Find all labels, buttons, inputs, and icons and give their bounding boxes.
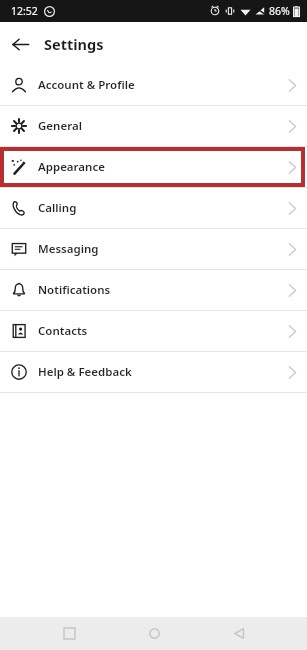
staticText: Settings xyxy=(44,34,104,54)
staticText: Calling xyxy=(38,200,77,216)
staticText: Appearance xyxy=(38,159,105,175)
staticText: Notifications xyxy=(38,282,111,298)
staticText: 12:52 xyxy=(11,4,38,18)
staticText: 86% xyxy=(269,4,290,18)
button[interactable]: Back xyxy=(222,617,256,650)
button[interactable]: Account & Profile xyxy=(0,65,307,105)
button[interactable]: Back xyxy=(6,30,34,58)
button[interactable]: Contacts xyxy=(0,311,307,351)
staticText: Contacts xyxy=(38,323,88,339)
button[interactable]: Messaging xyxy=(0,229,307,269)
button[interactable]: Help & Feedback xyxy=(0,352,307,392)
button[interactable]: Notifications xyxy=(0,270,307,310)
staticText: Messaging xyxy=(38,241,99,257)
button[interactable]: Calling xyxy=(0,188,307,228)
button[interactable]: Home xyxy=(137,617,171,650)
button[interactable]: Appearance xyxy=(0,147,307,187)
staticText: Account & Profile xyxy=(38,77,135,93)
button[interactable]: General xyxy=(0,106,307,146)
button[interactable]: Recent apps xyxy=(52,617,86,650)
staticText: Help & Feedback xyxy=(38,364,132,380)
staticText: General xyxy=(38,118,82,134)
